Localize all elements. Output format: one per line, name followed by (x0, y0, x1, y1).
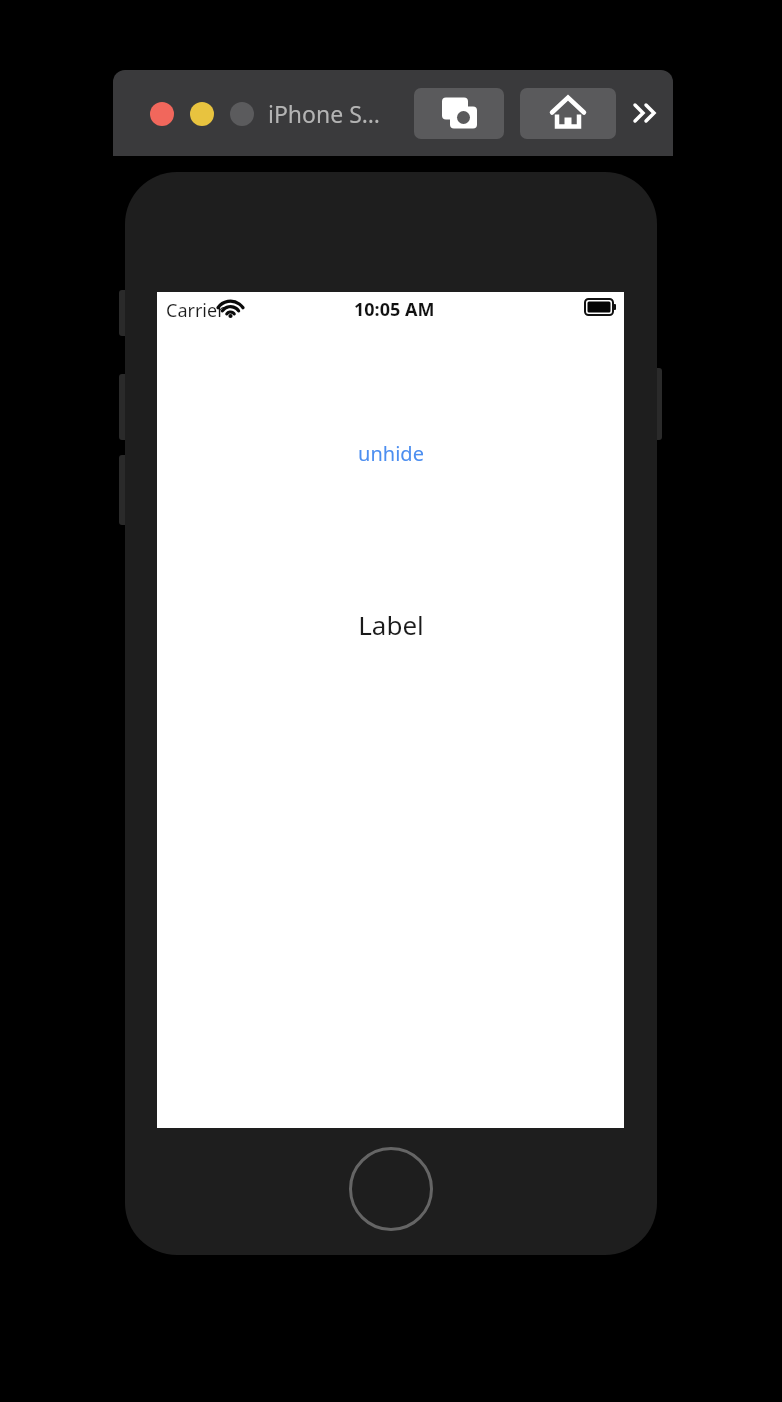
button[interactable]: Window control (190, 102, 214, 126)
button[interactable]: unhide (157, 434, 624, 472)
staticText: Carrier (166, 298, 225, 323)
button[interactable]: More (631, 96, 667, 130)
staticText: iPhone S… (268, 98, 380, 129)
button[interactable]: Window control (150, 102, 174, 126)
staticText: 10:05 AM (354, 297, 435, 322)
button[interactable]: Home (520, 88, 616, 139)
staticText: unhide (358, 440, 424, 467)
staticText: Label (358, 607, 424, 642)
button[interactable]: Window control (230, 102, 254, 126)
button[interactable]: Screenshot (414, 88, 504, 139)
